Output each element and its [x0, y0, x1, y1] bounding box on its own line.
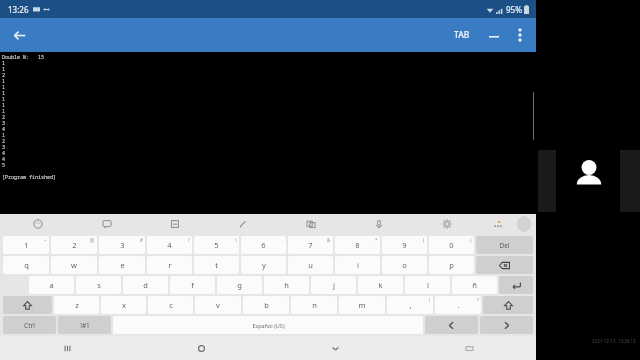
staticText: f — [191, 280, 194, 290]
button[interactable]: Recents — [0, 336, 134, 360]
button[interactable]: q — [3, 256, 49, 274]
button[interactable]: j — [311, 276, 356, 294]
staticText: 9 — [402, 240, 407, 250]
button[interactable]: h — [264, 276, 309, 294]
button[interactable]: r — [147, 256, 192, 274]
button[interactable]: f — [170, 276, 215, 294]
button[interactable]: Shift — [483, 296, 533, 314]
button[interactable]: Profile — [572, 158, 606, 192]
button[interactable]: Clipboard — [141, 214, 209, 234]
button[interactable]: Back — [268, 336, 402, 360]
staticText: e — [120, 260, 125, 270]
button[interactable]: g — [217, 276, 262, 294]
button[interactable]: 3 — [99, 236, 145, 254]
button[interactable]: 1 — [3, 236, 49, 254]
button[interactable]: Enter — [499, 276, 533, 294]
button[interactable]: ñ — [452, 276, 497, 294]
staticText: 3 — [2, 144, 6, 150]
button[interactable]: Settings — [413, 214, 481, 234]
button[interactable]: b — [243, 296, 289, 314]
button[interactable]: Voice — [345, 214, 413, 234]
button[interactable]: More — [481, 214, 515, 234]
button[interactable]: c — [148, 296, 193, 314]
button[interactable]: Sticker — [72, 214, 141, 234]
staticText: 7 — [308, 240, 313, 250]
button[interactable]: o — [382, 256, 427, 274]
staticText: 3 — [2, 120, 6, 126]
staticText: c — [169, 300, 173, 310]
staticText: j — [333, 280, 335, 290]
staticText: 4 — [2, 156, 9, 162]
button[interactable]: Translate — [277, 214, 345, 234]
staticText: s — [97, 280, 101, 290]
button[interactable]: Resize keyboard — [517, 216, 531, 232]
button[interactable]: Home — [134, 336, 268, 360]
button[interactable]: Emoji — [3, 214, 72, 234]
button[interactable]: Left — [425, 316, 478, 334]
staticText: 2021-12-13 13:26:13 — [592, 338, 636, 344]
staticText: y — [262, 260, 266, 270]
staticText: 1 — [2, 60, 6, 66]
button[interactable]: v — [195, 296, 241, 314]
button[interactable]: 2 — [51, 236, 97, 254]
staticText: g — [237, 280, 242, 290]
staticText: 4 — [2, 150, 6, 156]
staticText: ) — [470, 237, 472, 243]
button[interactable]: z — [54, 296, 99, 314]
staticText: 6 — [261, 240, 266, 250]
staticText: m — [358, 300, 366, 310]
button[interactable]: i — [335, 256, 380, 274]
button[interactable]: More options — [510, 25, 530, 45]
button[interactable]: 5 — [194, 236, 239, 254]
button[interactable]: e — [99, 256, 145, 274]
button[interactable]: w — [51, 256, 97, 274]
button[interactable]: Hide keyboard — [402, 336, 536, 360]
button[interactable]: a — [29, 276, 74, 294]
button[interactable]: m — [339, 296, 385, 314]
button[interactable]: 6 — [241, 236, 286, 254]
staticText: t — [215, 260, 218, 270]
staticText: h — [284, 280, 289, 290]
button[interactable]: Español (US) — [113, 316, 423, 334]
staticText: Español (US) — [252, 322, 285, 329]
staticText: 95% — [506, 4, 522, 15]
button[interactable]: p — [429, 256, 474, 274]
button[interactable]: k — [358, 276, 403, 294]
staticText: !#1 — [80, 321, 90, 330]
staticText: 4 — [2, 126, 6, 132]
staticText: & — [327, 237, 331, 243]
button[interactable]: y — [241, 256, 286, 274]
button[interactable]: n — [291, 296, 337, 314]
button[interactable]: 0 — [429, 236, 474, 254]
staticText: 3 — [120, 240, 125, 250]
staticText: d — [143, 280, 148, 290]
button[interactable]: l — [405, 276, 450, 294]
button[interactable]: Back — [6, 22, 32, 48]
staticText: v — [216, 300, 220, 310]
staticText: 1 — [2, 102, 6, 108]
button[interactable]: !#1 — [58, 316, 111, 334]
button[interactable]: d — [123, 276, 168, 294]
button[interactable]: , — [387, 296, 433, 314]
button[interactable]: Del — [476, 236, 533, 254]
button[interactable]: TAB — [448, 25, 476, 45]
button[interactable]: Ctrl — [3, 316, 56, 334]
button[interactable]: 7 — [288, 236, 333, 254]
button[interactable]: 4 — [147, 236, 192, 254]
staticText: · — [282, 237, 284, 243]
button[interactable]: Handwriting — [209, 214, 277, 234]
staticText: ! — [429, 297, 431, 303]
button[interactable]: u — [288, 256, 333, 274]
button[interactable]: 9 — [382, 236, 427, 254]
button[interactable]: Backspace — [476, 256, 533, 274]
button[interactable]: Right — [480, 316, 533, 334]
button[interactable]: . — [435, 296, 481, 314]
button[interactable]: 8 — [335, 236, 380, 254]
button[interactable]: Shift — [3, 296, 52, 314]
staticText: 1 — [2, 84, 6, 90]
button[interactable]: t — [194, 256, 239, 274]
button[interactable]: x — [101, 296, 146, 314]
button[interactable]: s — [76, 276, 121, 294]
button[interactable]: Minimize — [484, 25, 504, 45]
staticText: 2 — [2, 138, 6, 144]
